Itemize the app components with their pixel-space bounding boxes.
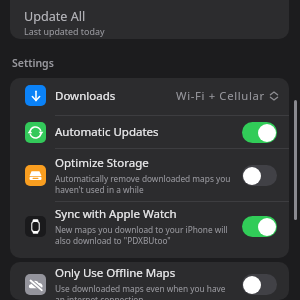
button[interactable]: Off [242,165,277,186]
staticText: Downloads [55,88,116,104]
staticText: Update All [24,8,86,25]
button[interactable]: Downloads [10,78,289,115]
staticText: Sync with Apple Watch [55,206,177,222]
staticText: Optimize Storage [55,155,149,171]
button[interactable]: Off [242,274,277,295]
staticText: Only Use Offline Maps [55,265,176,281]
staticText: Use downloaded maps even when you have a… [55,283,226,300]
staticText: Automatic Updates [55,124,159,140]
button[interactable]: Wi-Fi + Cellular [176,88,279,103]
staticText: Settings [12,56,54,70]
staticText: New maps you download to your iPhone wil… [55,224,228,247]
button[interactable]: Automatic Updates [10,116,289,148]
staticText: Wi-Fi + Cellular [176,88,265,103]
staticText: Automatically remove downloaded maps you… [55,173,231,196]
button[interactable]: On [242,216,277,237]
button[interactable]: Only Use Offline Maps [10,262,289,300]
button[interactable]: Optimize Storage [10,149,289,201]
staticText: Last updated today [24,25,105,37]
button[interactable]: Sync with Apple Watch [10,202,289,258]
button[interactable]: Update All [10,0,289,39]
button[interactable]: On [242,122,277,143]
